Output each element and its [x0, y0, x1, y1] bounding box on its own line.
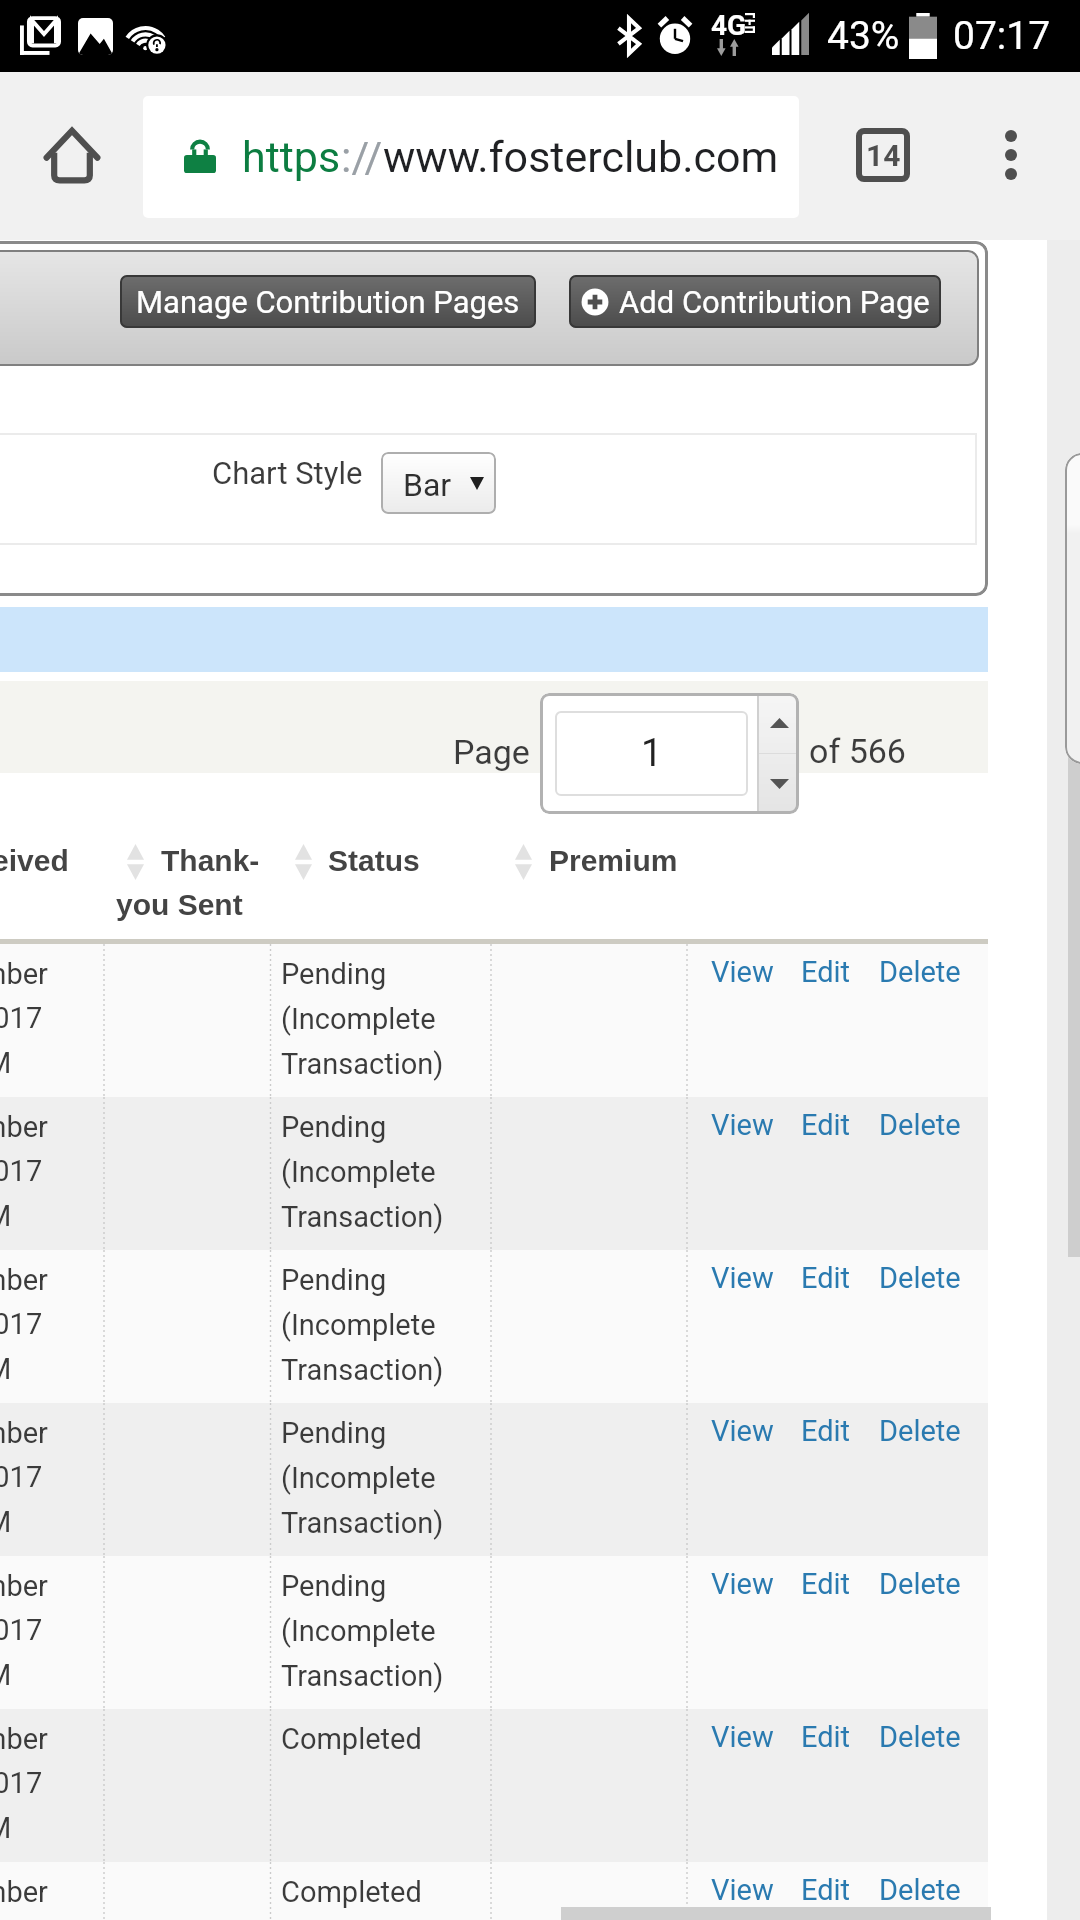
- staticText: 07:17: [953, 13, 1051, 59]
- staticText: mber: [0, 1101, 48, 1146]
- staticText: mber: [0, 1254, 48, 1299]
- button[interactable]: mber: [0, 1097, 988, 1250]
- staticText: Transaction): [281, 1344, 444, 1389]
- staticText: Bar: [403, 466, 452, 504]
- button[interactable]: Previous page: [759, 754, 799, 814]
- button[interactable]: Home: [27, 110, 117, 200]
- button[interactable]: Delete: [879, 1261, 961, 1295]
- staticText: Chart Style: [212, 455, 363, 491]
- staticText: of 566: [809, 731, 906, 771]
- staticText: Pending: [281, 1407, 387, 1452]
- staticText: Completed: [281, 1866, 422, 1911]
- staticText: Completed: [281, 1713, 422, 1758]
- staticText: (Incomplete: [281, 1299, 436, 1344]
- staticText: 2017: [0, 1604, 43, 1649]
- staticText: Transaction): [281, 1497, 444, 1542]
- button[interactable]: Edit: [801, 1261, 851, 1295]
- staticText: Manage Contribution Pages: [136, 284, 520, 320]
- button[interactable]: Tabs, 14 open: [838, 110, 928, 200]
- staticText: Status: [328, 844, 420, 878]
- staticText: (Incomplete: [281, 1605, 436, 1650]
- button[interactable]: mber: [0, 944, 988, 1097]
- button[interactable]: View: [711, 1720, 774, 1754]
- staticText: AM: [0, 1802, 12, 1847]
- button[interactable]: View: [711, 1108, 774, 1142]
- staticText: Add Contribution Page: [619, 284, 930, 320]
- button[interactable]: Delete: [879, 955, 961, 989]
- staticText: AM: [0, 1037, 12, 1082]
- staticText: Pending: [281, 1101, 387, 1146]
- staticText: you Sent: [116, 888, 243, 922]
- button[interactable]: Delete: [879, 1720, 961, 1754]
- button[interactable]: mber: [0, 1862, 988, 1920]
- staticText: (Incomplete: [281, 1146, 436, 1191]
- button[interactable]: https: [143, 96, 799, 218]
- button[interactable]: Delete: [879, 1414, 961, 1448]
- staticText: AM: [0, 1496, 12, 1541]
- staticText: Transaction): [281, 1191, 444, 1236]
- staticText: mber: [0, 1407, 48, 1452]
- staticText: 43%: [827, 13, 900, 59]
- button[interactable]: Edit: [801, 1567, 851, 1601]
- button[interactable]: Edit: [801, 1108, 851, 1142]
- staticText: Pending: [281, 1254, 387, 1299]
- staticText: mber: [0, 1713, 48, 1758]
- button[interactable]: Manage Contribution Pages: [120, 275, 536, 328]
- staticText: 1: [641, 731, 663, 776]
- button[interactable]: Edit: [801, 1873, 851, 1907]
- staticText: (Incomplete: [281, 993, 436, 1038]
- button[interactable]: Edit: [801, 1414, 851, 1448]
- staticText: eived: [0, 844, 69, 878]
- button[interactable]: mber: [0, 1250, 988, 1403]
- button[interactable]: Delete: [879, 1108, 961, 1142]
- staticText: 2017: [0, 1298, 43, 1343]
- button[interactable]: mber: [0, 1403, 988, 1556]
- staticText: Premium: [549, 844, 678, 878]
- button[interactable]: Delete: [879, 1567, 961, 1601]
- button[interactable]: mber: [0, 1556, 988, 1709]
- staticText: Page: [453, 732, 530, 772]
- staticText: mber: [0, 1560, 48, 1605]
- button[interactable]: More options: [966, 110, 1056, 200]
- button[interactable]: Next page: [759, 693, 799, 753]
- button[interactable]: View: [711, 1873, 774, 1907]
- staticText: 2017: [0, 1145, 43, 1190]
- button[interactable]: Add Contribution Page: [569, 275, 941, 328]
- button[interactable]: View: [711, 1567, 774, 1601]
- staticText: 2017: [0, 1451, 43, 1496]
- staticText: www.fosterclub.com: [383, 132, 779, 182]
- staticText: 2017: [0, 992, 43, 1037]
- button[interactable]: Bar: [381, 452, 496, 514]
- staticText: Pending: [281, 1560, 387, 1605]
- button[interactable]: View: [711, 1414, 774, 1448]
- staticText: 14: [866, 138, 901, 173]
- button[interactable]: Edit: [801, 955, 851, 989]
- staticText: ://: [341, 132, 383, 182]
- button[interactable]: Delete: [879, 1873, 961, 1907]
- staticText: mber: [0, 1866, 48, 1911]
- button[interactable]: View: [711, 955, 774, 989]
- staticText: Thank-: [161, 844, 260, 878]
- button[interactable]: Edit: [801, 1720, 851, 1754]
- staticText: https: [242, 132, 341, 182]
- staticText: AM: [0, 1343, 12, 1388]
- staticText: AM: [0, 1649, 12, 1694]
- staticText: (Incomplete: [281, 1452, 436, 1497]
- staticText: AM: [0, 1190, 12, 1235]
- staticText: mber: [0, 948, 48, 993]
- button[interactable]: mber: [0, 1709, 988, 1862]
- staticText: 4G: [711, 9, 747, 42]
- button[interactable]: View: [711, 1261, 774, 1295]
- staticText: Transaction): [281, 1650, 444, 1695]
- staticText: 2017: [0, 1757, 43, 1802]
- staticText: Transaction): [281, 1038, 444, 1083]
- staticText: Pending: [281, 948, 387, 993]
